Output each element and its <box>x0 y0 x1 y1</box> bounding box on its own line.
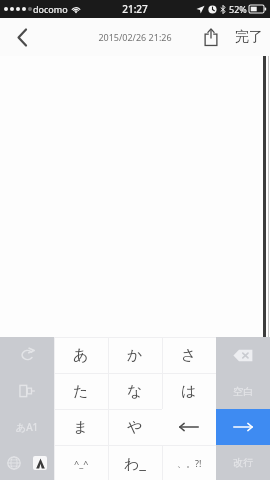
button[interactable] <box>0 373 54 409</box>
button[interactable]: 空白 <box>216 373 270 409</box>
staticText: か <box>127 346 143 365</box>
staticText: た <box>73 382 89 401</box>
staticText: な <box>127 382 143 401</box>
button[interactable]: Share <box>194 18 228 56</box>
staticText: さ <box>181 346 197 365</box>
button[interactable]: Switch keyboard <box>1 445 27 480</box>
button[interactable]: Back <box>0 18 44 56</box>
button[interactable] <box>0 337 54 373</box>
button[interactable]: ^_^ <box>54 445 108 480</box>
button[interactable]: か <box>108 337 162 373</box>
button[interactable]: さ <box>162 337 216 373</box>
staticText: 完了 <box>235 28 263 46</box>
button[interactable]: ま <box>54 409 108 445</box>
button[interactable]: 、。?! <box>162 445 216 480</box>
button[interactable]: Cursor right <box>216 409 270 445</box>
staticText: docomo <box>33 3 68 15</box>
staticText: 、。?! <box>177 457 202 469</box>
staticText: あ <box>73 346 89 365</box>
button[interactable]: Delete <box>216 337 270 373</box>
staticText: あA1 <box>16 420 39 434</box>
button[interactable]: た <box>54 373 108 409</box>
button[interactable]: Input method <box>27 445 53 480</box>
button[interactable]: 完了 <box>228 18 270 56</box>
staticText: 改行 <box>233 456 253 469</box>
staticText: ま <box>73 418 89 437</box>
button[interactable]: あA1 <box>0 409 54 445</box>
staticText: や <box>127 418 143 437</box>
staticText: は <box>181 382 197 401</box>
button[interactable]: は <box>162 373 216 409</box>
button[interactable]: な <box>108 373 162 409</box>
staticText: 52% <box>229 3 247 15</box>
button[interactable]: Cursor left <box>162 409 216 445</box>
staticText: 空白 <box>233 385 253 398</box>
staticText: 2015/02/26 21:26 <box>98 31 172 43</box>
button[interactable]: わ_ <box>108 445 162 480</box>
staticText: ^_^ <box>74 457 89 469</box>
staticText: わ_ <box>124 453 147 473</box>
staticText: 21:27 <box>122 2 148 16</box>
button[interactable]: あ <box>54 337 108 373</box>
button[interactable]: 改行 <box>216 445 270 480</box>
button[interactable]: や <box>108 409 162 445</box>
